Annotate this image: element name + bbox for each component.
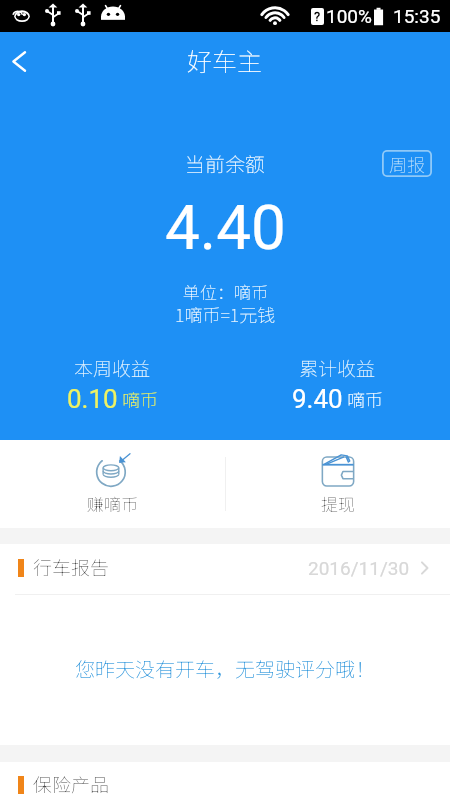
staticText: 100% xyxy=(326,5,372,27)
button[interactable]: 保险产品 xyxy=(0,761,450,800)
staticText: 0.10 xyxy=(67,384,118,414)
staticText: 累计收益 xyxy=(299,354,376,382)
staticText: 赚嘀币 xyxy=(87,491,138,516)
staticText: 提现 xyxy=(321,491,355,516)
staticText: 嘀币 xyxy=(347,386,383,412)
staticText: 2016/11/30 xyxy=(308,557,410,579)
button[interactable]: 提现 xyxy=(225,440,450,528)
button[interactable]: 行车报告 xyxy=(0,544,450,594)
staticText: 行车报告 xyxy=(33,553,110,581)
staticText: 9.40 xyxy=(292,384,343,414)
staticText: 好车主 xyxy=(187,42,263,78)
staticText: 嘀币 xyxy=(122,386,158,412)
staticText: 单位：嘀币 xyxy=(183,279,268,304)
staticText: 周报 xyxy=(389,151,425,177)
staticText: 本周收益 xyxy=(74,354,151,382)
button[interactable]: 周报 xyxy=(382,150,432,177)
staticText: 保险产品 xyxy=(33,770,110,798)
staticText: 1嘀币=1元钱 xyxy=(175,301,276,327)
button[interactable]: 赚嘀币 xyxy=(0,440,225,528)
staticText: ? xyxy=(314,9,321,24)
staticText: 15:35 xyxy=(393,5,441,27)
staticText: 您昨天没有开车，无驾驶评分哦！ xyxy=(75,654,375,683)
staticText: 当前余额 xyxy=(185,149,265,178)
staticText: 4.40 xyxy=(165,191,286,264)
button[interactable]: Back xyxy=(0,32,37,90)
